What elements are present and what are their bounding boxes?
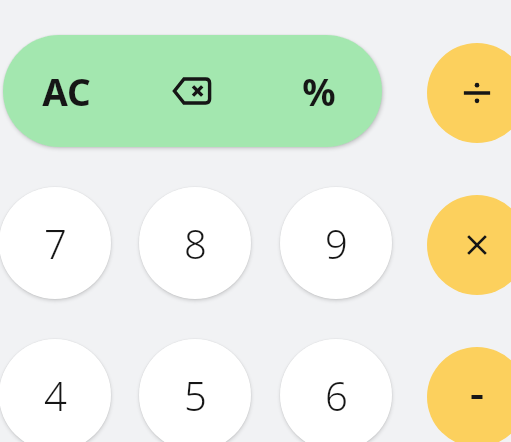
staticText: 6 bbox=[325, 368, 348, 422]
button[interactable]: 9 bbox=[280, 187, 392, 299]
button[interactable]: 6 bbox=[280, 339, 392, 442]
button[interactable]: % bbox=[255, 35, 382, 147]
staticText: 8 bbox=[184, 216, 207, 270]
staticText: AC bbox=[42, 66, 91, 116]
button[interactable]: 8 bbox=[139, 187, 251, 299]
staticText: 5 bbox=[184, 368, 207, 422]
button[interactable]: Subtract bbox=[427, 347, 511, 442]
button[interactable]: AC bbox=[3, 35, 129, 147]
button[interactable]: 5 bbox=[139, 339, 251, 442]
button[interactable]: Multiply bbox=[427, 195, 511, 295]
staticText: 7 bbox=[44, 216, 67, 270]
button[interactable]: Backspace bbox=[129, 35, 255, 147]
staticText: 4 bbox=[44, 368, 67, 422]
button[interactable]: 7 bbox=[0, 187, 111, 299]
button[interactable]: 4 bbox=[0, 339, 111, 442]
button[interactable]: Divide bbox=[427, 43, 511, 143]
staticText: 9 bbox=[325, 216, 348, 270]
staticText: % bbox=[302, 66, 336, 116]
